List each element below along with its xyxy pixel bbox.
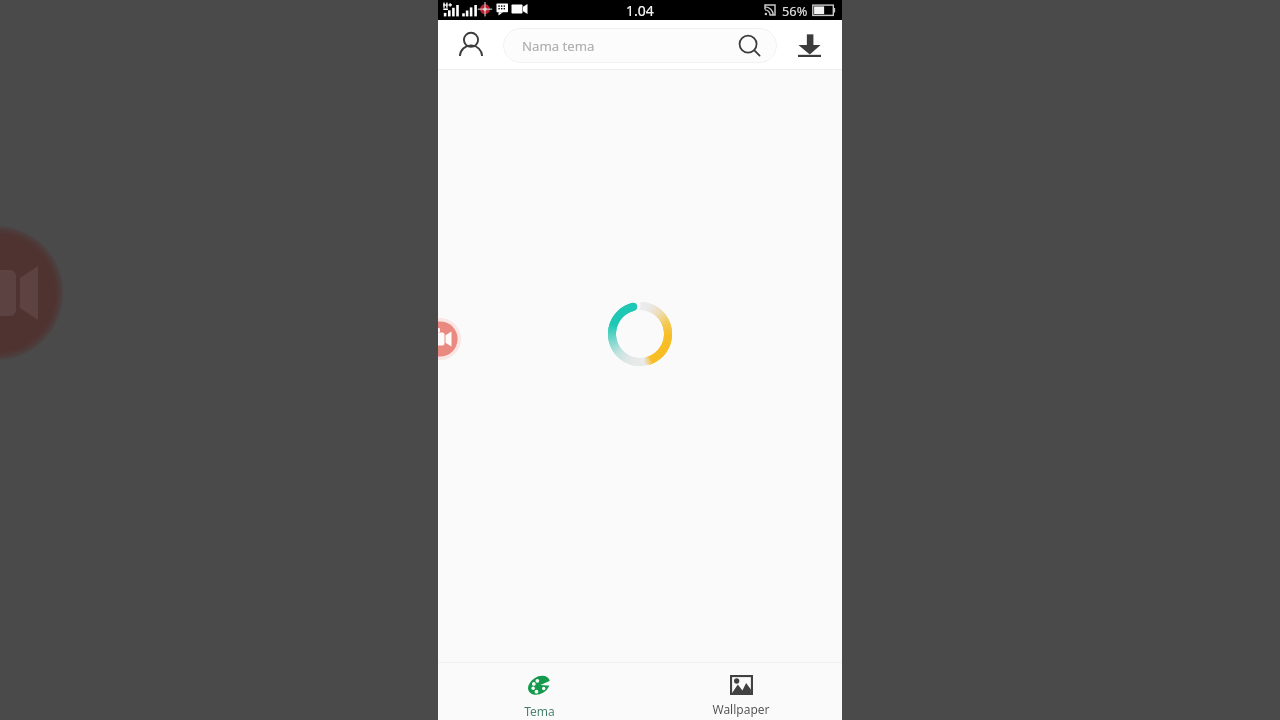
staticText: 56%: [782, 2, 808, 19]
staticText: Wallpaper: [712, 701, 770, 717]
button[interactable]: Search: [735, 31, 765, 61]
button[interactable]: Tema: [438, 663, 640, 720]
staticText: Nama tema: [522, 37, 595, 55]
button[interactable]: Wallpaper: [640, 663, 842, 720]
button[interactable]: Record screen: [438, 318, 461, 360]
button[interactable]: Account: [454, 28, 488, 62]
staticText: 1.04: [626, 1, 654, 20]
button[interactable]: Nama tema: [503, 28, 777, 63]
staticText: Tema: [524, 703, 555, 719]
button[interactable]: Downloads: [792, 28, 826, 62]
